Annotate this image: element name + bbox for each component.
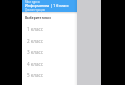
staticText: Выберите класс [25, 16, 52, 20]
staticText: Мои курсы [25, 0, 40, 4]
staticText: 5 класс [27, 72, 43, 78]
staticText: 1 класс [27, 26, 43, 32]
button[interactable]: 3 класс [22, 46, 77, 58]
button[interactable]: 1 класс [22, 23, 77, 35]
button[interactable]: 2 класс [22, 35, 77, 47]
staticText: 3 класс [27, 49, 43, 55]
staticText: 4 класс [27, 61, 43, 67]
staticText: Информатика | 1 б класс [25, 3, 69, 8]
staticText: 2 класс [27, 38, 43, 44]
button[interactable]: 4 класс [22, 58, 77, 70]
button[interactable]: 5 класс [22, 69, 77, 81]
staticText: Демонстрация [25, 8, 46, 12]
button[interactable]: Мои курсы [22, 0, 77, 12]
